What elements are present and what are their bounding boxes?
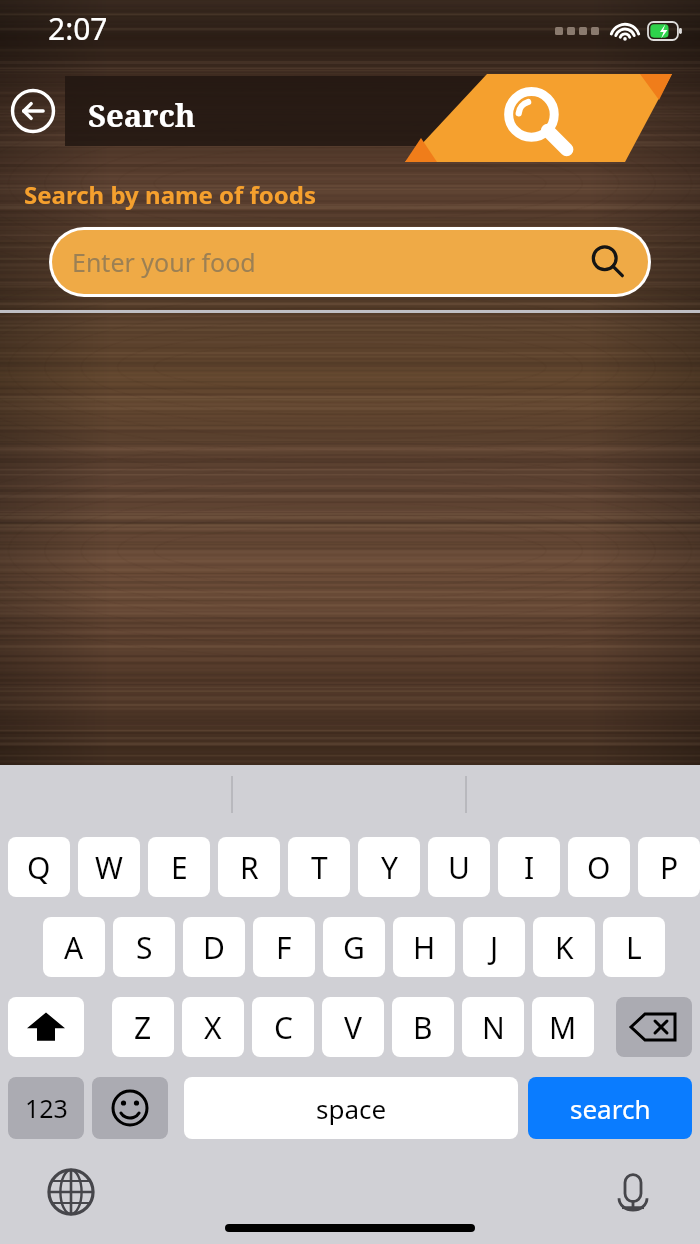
button[interactable]: L: [603, 917, 665, 977]
button[interactable]: Back: [10, 88, 56, 134]
staticText: A: [64, 927, 84, 968]
button[interactable]: N: [462, 997, 524, 1057]
button[interactable]: S: [113, 917, 175, 977]
staticText: P: [660, 847, 679, 888]
button[interactable]: A: [43, 917, 105, 977]
staticText: space: [316, 1091, 387, 1126]
button[interactable]: B: [392, 997, 454, 1057]
staticText: Z: [134, 1007, 152, 1048]
staticText: U: [448, 847, 470, 888]
staticText: D: [203, 927, 225, 968]
staticText: M: [549, 1007, 577, 1048]
staticText: R: [240, 847, 259, 888]
button[interactable]: Change keyboard: [42, 1163, 100, 1221]
staticText: Enter your food: [72, 245, 256, 279]
button[interactable]: Dictation: [604, 1163, 662, 1221]
staticText: Search: [88, 94, 196, 136]
button[interactable]: R: [218, 837, 280, 897]
staticText: O: [587, 847, 611, 888]
staticText: V: [344, 1007, 362, 1048]
button[interactable]: M: [532, 997, 594, 1057]
button[interactable]: Z: [112, 997, 174, 1057]
staticText: H: [413, 927, 436, 968]
staticText: W: [95, 847, 123, 888]
staticText: B: [413, 1007, 433, 1048]
staticText: Search by name of foods: [24, 178, 317, 211]
button[interactable]: F: [253, 917, 315, 977]
button[interactable]: Y: [358, 837, 420, 897]
staticText: L: [626, 927, 642, 968]
button[interactable]: search: [528, 1077, 692, 1139]
button[interactable]: Backspace: [616, 997, 692, 1057]
button[interactable]: W: [78, 837, 140, 897]
staticText: I: [524, 847, 535, 888]
button[interactable]: H: [393, 917, 455, 977]
button[interactable]: U: [428, 837, 490, 897]
button[interactable]: K: [533, 917, 595, 977]
staticText: G: [343, 927, 365, 968]
button[interactable]: D: [183, 917, 245, 977]
staticText: F: [276, 927, 292, 968]
staticText: 2:07: [48, 8, 108, 49]
button[interactable]: Enter your food: [52, 230, 648, 294]
button[interactable]: Q: [8, 837, 70, 897]
staticText: K: [555, 927, 574, 968]
button[interactable]: T: [288, 837, 350, 897]
staticText: Q: [27, 847, 51, 888]
button[interactable]: J: [463, 917, 525, 977]
button[interactable]: Emoji: [92, 1077, 168, 1139]
staticText: Y: [381, 847, 398, 888]
staticText: C: [274, 1007, 293, 1048]
button[interactable]: O: [568, 837, 630, 897]
button[interactable]: G: [323, 917, 385, 977]
button[interactable]: Shift: [8, 997, 84, 1057]
button[interactable]: P: [638, 837, 700, 897]
staticText: J: [490, 927, 499, 968]
button[interactable]: C: [252, 997, 314, 1057]
button[interactable]: space: [184, 1077, 518, 1139]
staticText: 123: [25, 1091, 68, 1125]
staticText: N: [482, 1007, 505, 1048]
button[interactable]: 123: [8, 1077, 84, 1139]
staticText: S: [136, 927, 153, 968]
button[interactable]: X: [182, 997, 244, 1057]
button[interactable]: E: [148, 837, 210, 897]
staticText: T: [311, 847, 328, 888]
button[interactable]: V: [322, 997, 384, 1057]
staticText: X: [204, 1007, 222, 1048]
button[interactable]: I: [498, 837, 560, 897]
staticText: search: [570, 1091, 651, 1126]
staticText: E: [171, 847, 188, 888]
